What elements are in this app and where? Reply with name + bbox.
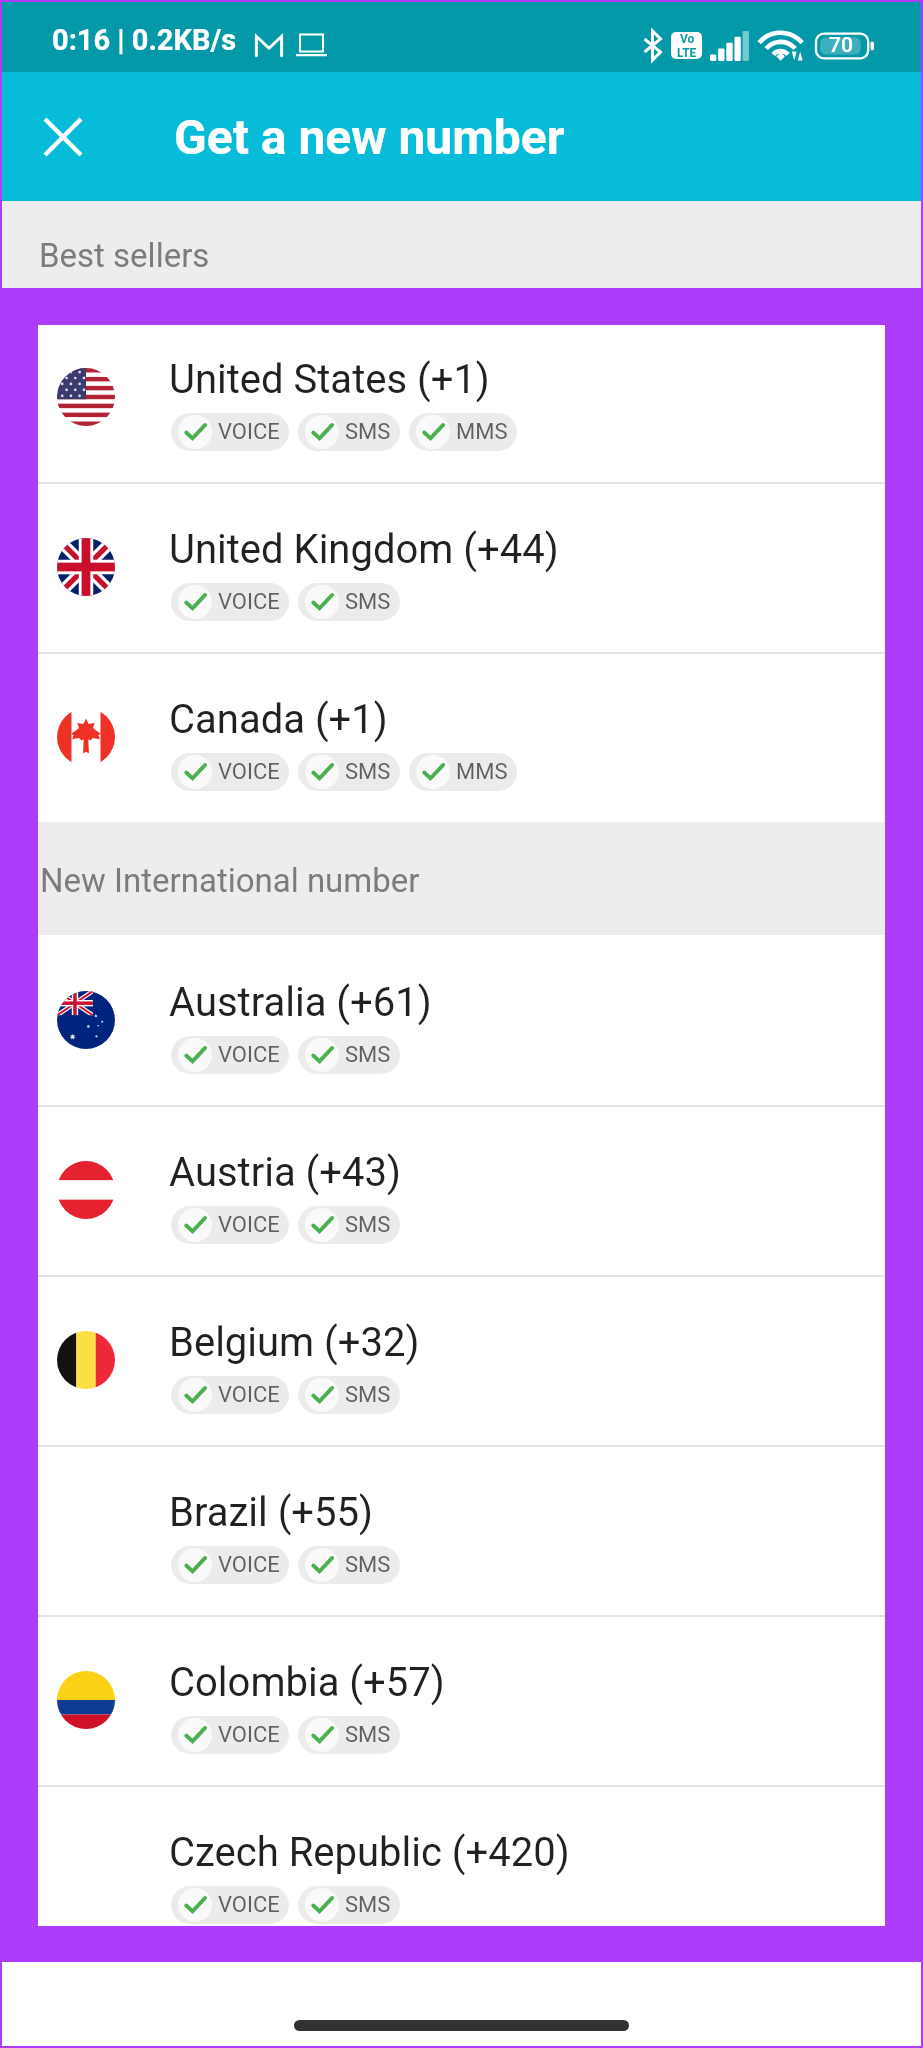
- staticText: MMS: [456, 759, 508, 785]
- staticText: VOICE: [218, 419, 280, 445]
- staticText: VOICE: [218, 1212, 280, 1238]
- staticText: VOICE: [218, 1722, 280, 1748]
- staticText: Brazil (+55): [169, 1489, 373, 1536]
- staticText: 0:16 | 0.2KB/s: [52, 23, 237, 57]
- staticText: SMS: [345, 1042, 391, 1068]
- button[interactable]: Czech Republic (+420): [38, 1785, 885, 1926]
- staticText: Vo: [680, 32, 695, 46]
- button[interactable]: Close: [24, 98, 102, 176]
- staticText: Get a new number: [174, 109, 565, 165]
- staticText: Austria (+43): [169, 1149, 401, 1196]
- staticText: VOICE: [218, 1892, 280, 1918]
- staticText: United States (+1): [169, 356, 490, 403]
- staticText: New International number: [40, 861, 420, 900]
- staticText: VOICE: [218, 589, 280, 615]
- staticText: SMS: [345, 1212, 391, 1238]
- staticText: SMS: [345, 759, 391, 785]
- staticText: SMS: [345, 589, 391, 615]
- button[interactable]: Austria (+43): [38, 1105, 885, 1275]
- button[interactable]: Canada (+1): [38, 652, 885, 822]
- staticText: SMS: [345, 1382, 391, 1408]
- button[interactable]: Brazil (+55): [38, 1445, 885, 1615]
- button[interactable]: Belgium (+32): [38, 1275, 885, 1445]
- button[interactable]: United States (+1): [38, 325, 885, 482]
- staticText: Colombia (+57): [169, 1659, 445, 1706]
- staticText: VOICE: [218, 759, 280, 785]
- staticText: SMS: [345, 1722, 391, 1748]
- staticText: Best sellers: [39, 236, 210, 275]
- staticText: VOICE: [218, 1382, 280, 1408]
- button[interactable]: Australia (+61): [38, 935, 885, 1105]
- staticText: United Kingdom (+44): [169, 526, 559, 573]
- staticText: 70: [829, 33, 853, 58]
- staticText: Canada (+1): [169, 696, 388, 743]
- staticText: SMS: [345, 419, 391, 445]
- staticText: Czech Republic (+420): [169, 1829, 570, 1876]
- staticText: Australia (+61): [169, 979, 432, 1026]
- button[interactable]: United Kingdom (+44): [38, 482, 885, 652]
- staticText: MMS: [456, 419, 508, 445]
- button[interactable]: Colombia (+57): [38, 1615, 885, 1785]
- staticText: VOICE: [218, 1042, 280, 1068]
- staticText: SMS: [345, 1892, 391, 1918]
- staticText: LTE: [677, 46, 697, 59]
- staticText: SMS: [345, 1552, 391, 1578]
- staticText: VOICE: [218, 1552, 280, 1578]
- staticText: Belgium (+32): [169, 1319, 420, 1366]
